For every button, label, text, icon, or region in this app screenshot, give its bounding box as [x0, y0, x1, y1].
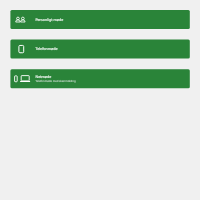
button[interactable]: Netmøde: [10, 69, 189, 88]
staticText: Netmøde: [35, 74, 51, 79]
button[interactable]: Personligt møde: [10, 10, 189, 29]
staticText: Personligt møde: [35, 17, 63, 22]
staticText: Telefonmøde: [35, 46, 58, 51]
staticText: Telefonmøde med skærmdeling: [35, 79, 76, 83]
button[interactable]: Telefonmøde: [10, 39, 189, 58]
